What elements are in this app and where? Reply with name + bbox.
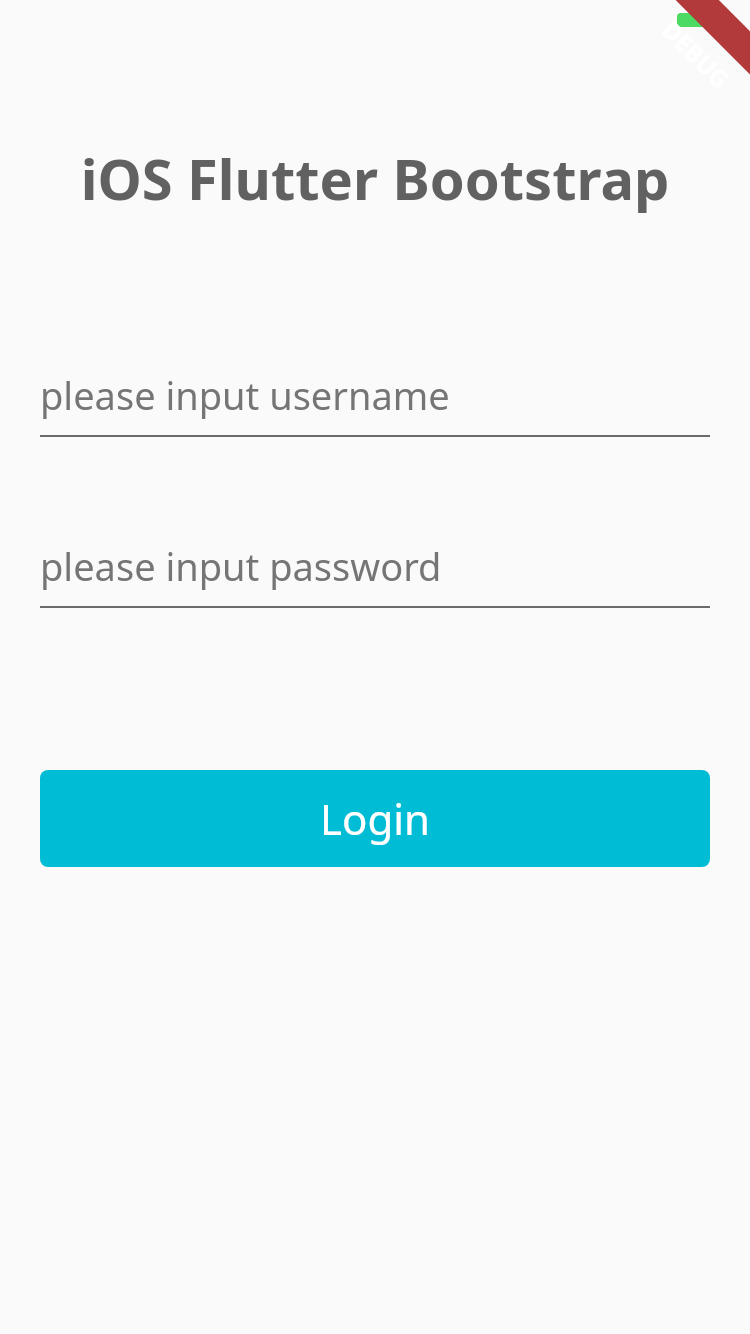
button[interactable]: please input username xyxy=(40,366,710,437)
button[interactable]: please input password xyxy=(40,537,710,608)
staticText: DEBUG xyxy=(655,13,737,95)
staticText: Login xyxy=(320,790,431,847)
button[interactable]: Login xyxy=(40,770,710,867)
staticText: iOS Flutter Bootstrap xyxy=(0,140,750,216)
other: Battery charging xyxy=(672,8,718,32)
staticText: please input username xyxy=(40,369,450,421)
staticText: please input password xyxy=(40,540,442,592)
